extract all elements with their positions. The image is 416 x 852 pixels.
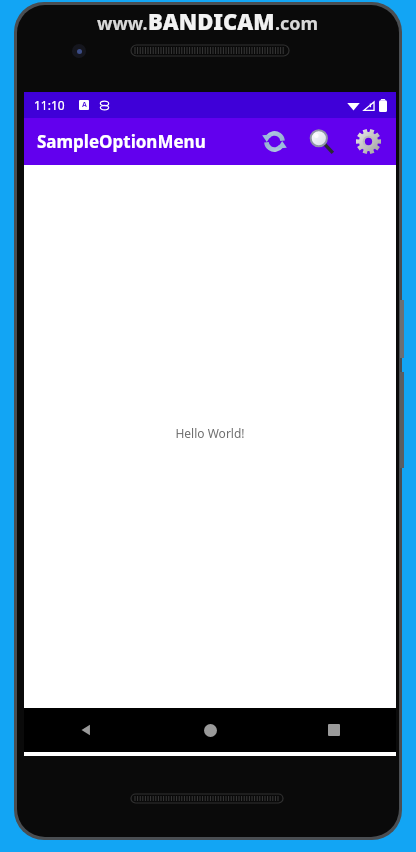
staticText: A xyxy=(82,100,87,110)
button[interactable]: Refresh xyxy=(251,118,298,165)
button[interactable]: Home xyxy=(148,708,272,752)
staticText: www. xyxy=(97,11,148,36)
staticText: .com xyxy=(275,11,319,36)
button[interactable]: Search xyxy=(298,118,345,165)
staticText: 11:10 xyxy=(34,97,65,113)
button[interactable]: Recent apps xyxy=(272,708,396,752)
staticText: SampleOptionMenu xyxy=(37,130,206,153)
staticText: BANDICAM xyxy=(148,6,275,36)
staticText: Hello World! xyxy=(175,425,245,441)
button[interactable]: Settings xyxy=(345,118,392,165)
button[interactable]: Back xyxy=(24,708,148,752)
